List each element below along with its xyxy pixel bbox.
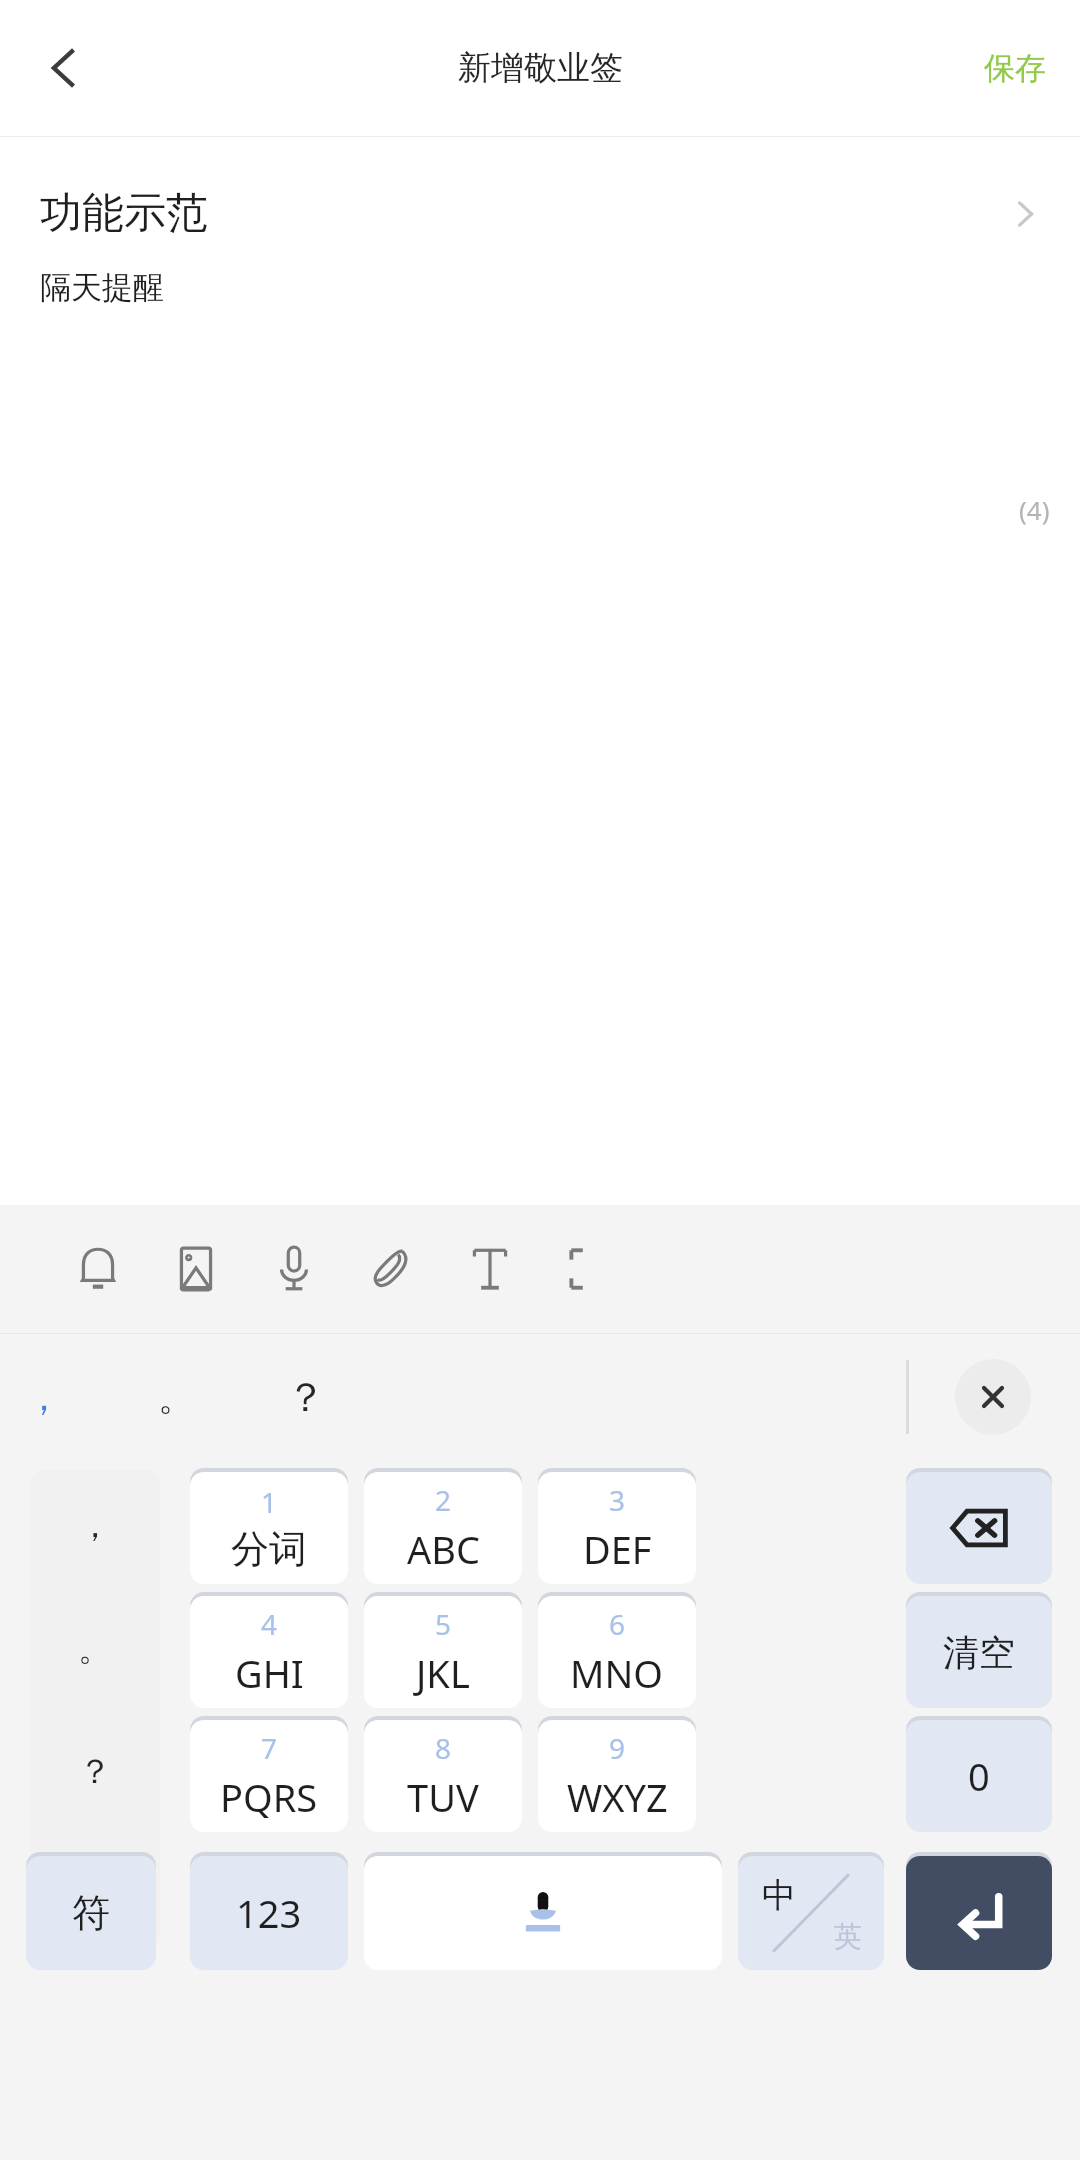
button[interactable]: Backspace bbox=[906, 1468, 1052, 1584]
staticText: ？ bbox=[78, 1750, 112, 1793]
staticText: 2 bbox=[435, 1481, 452, 1519]
button[interactable]: Voice input bbox=[364, 1852, 722, 1970]
button[interactable]: 1 bbox=[190, 1468, 348, 1584]
staticText: 保存 bbox=[984, 49, 1046, 88]
staticText: 功能示范 bbox=[40, 187, 1010, 240]
staticText: JKL bbox=[416, 1647, 470, 1699]
staticText: DEF bbox=[583, 1523, 652, 1575]
staticText: 分词 bbox=[231, 1525, 307, 1573]
button[interactable]: Enter bbox=[906, 1852, 1052, 1970]
staticText: ABC bbox=[407, 1523, 480, 1575]
button[interactable]: 3 bbox=[538, 1468, 696, 1584]
staticText: 1 bbox=[261, 1483, 278, 1521]
staticText: 。 bbox=[78, 1627, 112, 1670]
button[interactable]: Chinese English toggle bbox=[738, 1852, 884, 1970]
staticText: 新增敬业签 bbox=[458, 47, 623, 89]
staticText: GHI bbox=[235, 1647, 304, 1699]
button[interactable]: Attachment bbox=[351, 1228, 433, 1310]
staticText: 9 bbox=[609, 1729, 626, 1767]
button[interactable]: Voice bbox=[253, 1228, 335, 1310]
staticText: TUV bbox=[407, 1771, 479, 1823]
staticText: 中 bbox=[762, 1874, 796, 1917]
button[interactable]: Back bbox=[22, 26, 106, 110]
staticText: (4) bbox=[1019, 492, 1050, 527]
staticText: 隔天提醒 bbox=[40, 268, 164, 307]
button[interactable]: 123 bbox=[190, 1852, 348, 1970]
button[interactable]: ？ bbox=[278, 1372, 334, 1422]
staticText: PQRS bbox=[220, 1771, 318, 1823]
button[interactable]: 符 bbox=[26, 1852, 156, 1970]
button[interactable]: 4 bbox=[190, 1592, 348, 1708]
staticText: ， bbox=[78, 1504, 112, 1547]
button[interactable]: 功能示范 bbox=[0, 181, 1080, 246]
button[interactable]: Reminder bbox=[57, 1228, 139, 1310]
button[interactable]: Image bbox=[155, 1228, 237, 1310]
staticText: 0 bbox=[968, 1750, 990, 1802]
button[interactable]: 5 bbox=[364, 1592, 522, 1708]
button[interactable]: 6 bbox=[538, 1592, 696, 1708]
staticText: 123 bbox=[236, 1887, 302, 1939]
button[interactable]: Close keyboard bbox=[955, 1359, 1031, 1435]
staticText: 符 bbox=[72, 1889, 110, 1937]
button[interactable]: 2 bbox=[364, 1468, 522, 1584]
button[interactable]: 清空 bbox=[906, 1592, 1052, 1708]
staticText: 7 bbox=[261, 1729, 278, 1767]
staticText: 6 bbox=[609, 1605, 626, 1643]
button[interactable]: 0 bbox=[906, 1716, 1052, 1832]
staticText: MNO bbox=[570, 1647, 664, 1699]
button[interactable]: Fullscreen bbox=[547, 1228, 629, 1310]
staticText: 英 bbox=[834, 1919, 862, 1954]
button[interactable]: 7 bbox=[190, 1716, 348, 1832]
staticText: ！ bbox=[78, 1873, 112, 1916]
staticText: 8 bbox=[435, 1729, 452, 1767]
button[interactable]: ， bbox=[30, 1470, 160, 1950]
button[interactable]: 8 bbox=[364, 1716, 522, 1832]
staticText: WXYZ bbox=[567, 1771, 668, 1823]
button[interactable]: Text format bbox=[449, 1228, 531, 1310]
button[interactable]: 9 bbox=[538, 1716, 696, 1832]
button[interactable]: 保存 bbox=[964, 35, 1066, 102]
button[interactable]: ， bbox=[18, 1375, 70, 1420]
staticText: 清空 bbox=[943, 1630, 1015, 1675]
staticText: 4 bbox=[261, 1605, 278, 1643]
button[interactable]: 。 bbox=[150, 1375, 202, 1420]
staticText: 3 bbox=[609, 1481, 626, 1519]
staticText: 5 bbox=[435, 1605, 452, 1643]
